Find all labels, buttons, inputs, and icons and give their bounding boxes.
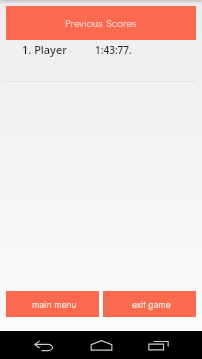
staticText: main menu bbox=[32, 298, 77, 312]
staticText: 1. Player bbox=[22, 42, 67, 57]
button[interactable]: Previous Scores bbox=[6, 6, 196, 40]
staticText: 1:43:77. bbox=[95, 43, 132, 57]
button[interactable]: exit game bbox=[103, 291, 196, 317]
button[interactable]: 1. Player bbox=[6, 40, 196, 81]
staticText: exit game bbox=[132, 298, 171, 312]
button[interactable]: main menu bbox=[6, 291, 99, 317]
button[interactable]: Home bbox=[87, 331, 115, 359]
staticText: Previous Scores bbox=[65, 15, 137, 31]
button[interactable]: Recent apps bbox=[144, 331, 172, 359]
button[interactable]: Back bbox=[30, 331, 58, 359]
